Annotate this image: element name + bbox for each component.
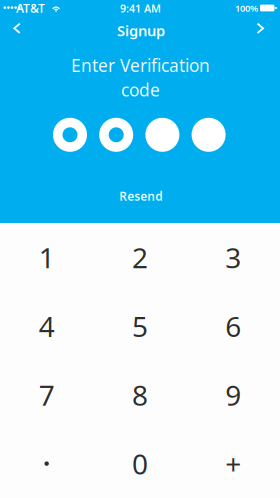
staticText: 6 xyxy=(225,307,241,345)
staticText: 9:41 AM xyxy=(120,1,161,15)
staticText: Signup xyxy=(117,21,165,40)
staticText: 5 xyxy=(132,307,148,345)
button[interactable]: Resend xyxy=(103,181,179,211)
button[interactable]: 4 xyxy=(0,292,93,361)
button[interactable] xyxy=(0,429,93,498)
staticText: 9 xyxy=(225,376,241,413)
staticText: Resend xyxy=(119,188,163,204)
button[interactable]: 2 xyxy=(93,223,187,292)
button[interactable]: Next xyxy=(242,13,278,43)
staticText: 3 xyxy=(225,239,241,276)
staticText: 8 xyxy=(132,376,148,413)
staticText: 0 xyxy=(132,445,148,482)
staticText: 1 xyxy=(39,239,55,276)
button[interactable]: 8 xyxy=(93,360,187,429)
staticText: 4 xyxy=(39,307,55,345)
button[interactable]: 5 xyxy=(93,292,187,361)
button[interactable]: 9 xyxy=(187,360,280,429)
staticText: AT&T xyxy=(16,0,45,16)
button[interactable]: 7 xyxy=(0,360,93,429)
button[interactable]: + xyxy=(187,429,280,498)
staticText: Enter Verification xyxy=(71,54,210,77)
button[interactable]: 3 xyxy=(187,223,280,292)
staticText: 7 xyxy=(39,376,55,413)
staticText: + xyxy=(225,445,241,482)
button[interactable]: 0 xyxy=(93,429,187,498)
staticText: 2 xyxy=(132,239,148,276)
button[interactable]: 1 xyxy=(0,223,93,292)
button[interactable]: Back xyxy=(0,13,35,43)
button[interactable]: 6 xyxy=(187,292,280,361)
staticText: 100% xyxy=(235,2,258,14)
staticText: code xyxy=(121,78,160,101)
